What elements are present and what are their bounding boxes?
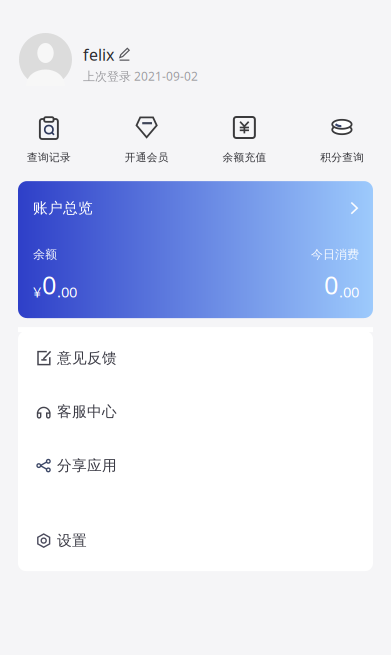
staticText: .00 [339, 282, 359, 301]
staticText: 余额 [33, 247, 57, 262]
staticText: 积分查询 [320, 151, 364, 164]
staticText: 余额充值 [222, 151, 266, 164]
button[interactable]: 设置 [18, 514, 373, 567]
staticText: 上次登录 2021-09-02 [83, 68, 198, 84]
staticText: .00 [57, 282, 77, 301]
staticText: 设置 [57, 532, 87, 550]
staticText: 客服中心 [57, 403, 117, 421]
staticText: 开通会员 [125, 151, 169, 164]
button[interactable]: 客服中心 [18, 384, 373, 439]
staticText: 分享应用 [57, 457, 117, 475]
button[interactable]: 余额充值 [195, 116, 293, 164]
staticText: 0 [324, 268, 338, 301]
button[interactable]: 积分查询 [293, 116, 391, 164]
staticText: ¥ [33, 282, 41, 301]
staticText: 0 [42, 268, 56, 301]
button[interactable]: 查询记录 [0, 116, 98, 164]
staticText: 今日消费 [311, 247, 359, 262]
staticText: felix [83, 44, 114, 65]
staticText: 意见反馈 [57, 349, 117, 367]
button[interactable]: 分享应用 [18, 439, 373, 492]
button[interactable]: 意见反馈 [18, 332, 373, 384]
button[interactable]: 开通会员 [98, 116, 196, 164]
button[interactable]: 账户总览 [18, 181, 373, 318]
staticText: 账户总览 [33, 199, 93, 217]
staticText: 查询记录 [27, 151, 71, 164]
